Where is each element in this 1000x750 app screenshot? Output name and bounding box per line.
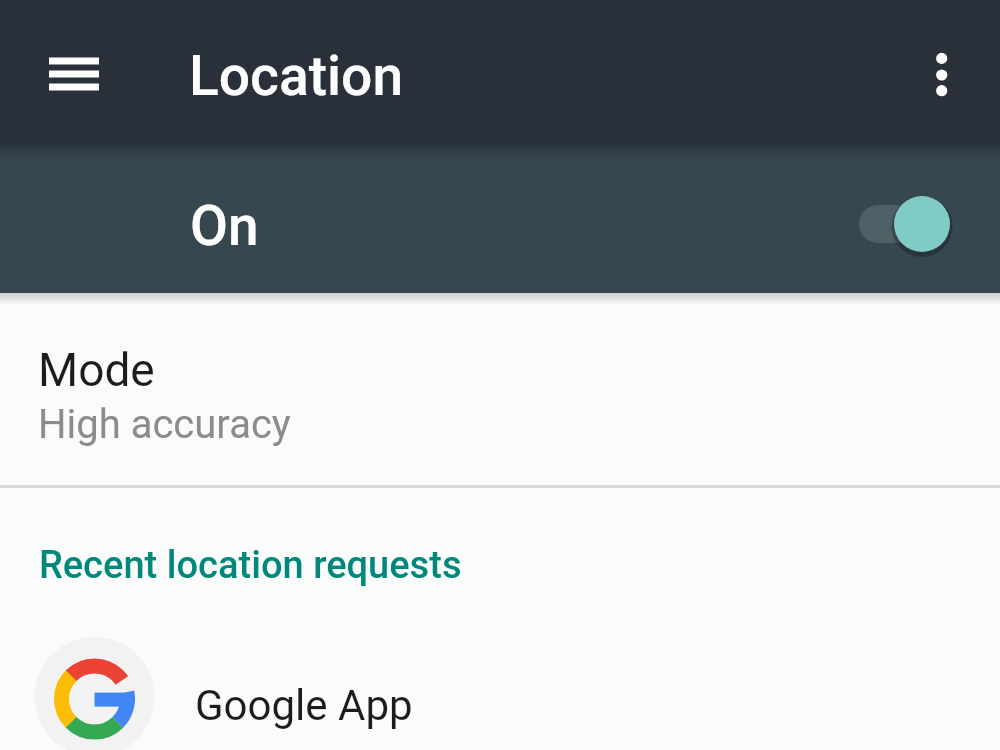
button[interactable]: Google App [0, 615, 1000, 750]
staticText: Recent location requests [39, 543, 462, 588]
button[interactable] [910, 40, 974, 110]
staticText: Mode [38, 343, 155, 397]
staticText: Location [189, 44, 403, 108]
button[interactable] [35, 45, 115, 105]
button[interactable]: Mode [0, 305, 1000, 485]
staticText: High accuracy [38, 401, 291, 448]
button[interactable] [840, 180, 970, 268]
staticText: On [190, 194, 259, 258]
staticText: Google App [195, 681, 413, 730]
